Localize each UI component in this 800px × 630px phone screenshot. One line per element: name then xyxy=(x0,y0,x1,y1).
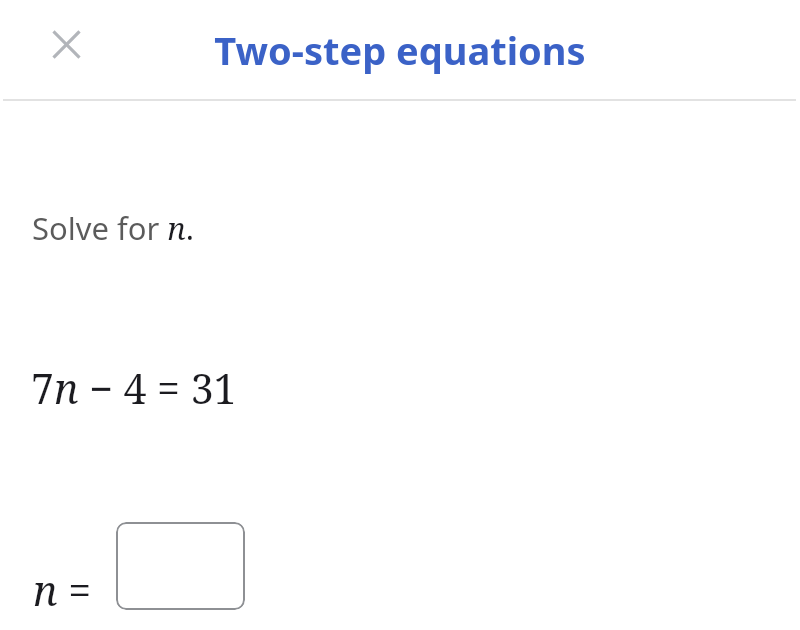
button[interactable]: Close xyxy=(38,16,94,72)
staticText: Two-step equations xyxy=(0,24,800,76)
staticText: 7n − 4 = 31 xyxy=(31,360,237,416)
staticText: Solve for n. xyxy=(32,207,194,249)
button[interactable]: Answer input field xyxy=(116,522,245,610)
staticText: n = xyxy=(33,562,92,618)
